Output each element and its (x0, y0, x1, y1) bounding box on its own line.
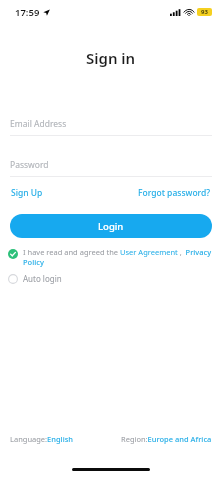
button[interactable]: Forgot password? (137, 185, 212, 201)
other: Agree to terms checkbox, checked (8, 249, 18, 259)
button[interactable]: Language:English (10, 432, 74, 446)
button[interactable]: Sign Up (10, 185, 44, 201)
staticText: Forgot password? (138, 187, 211, 199)
staticText: Password (10, 159, 49, 171)
button[interactable]: Auto login checkbox, unchecked (8, 273, 212, 284)
staticText: Sign Up (11, 187, 43, 199)
button[interactable]: Email Address (10, 116, 212, 136)
staticText: Login (98, 220, 124, 233)
staticText: Auto login (23, 273, 62, 284)
staticText: Sign in (86, 48, 136, 68)
staticText: 17:59 (15, 6, 40, 19)
other: Auto login checkbox, unchecked (8, 274, 18, 284)
button[interactable]: Region:Europe and Africa (121, 432, 212, 446)
staticText: Email Address (10, 118, 67, 130)
staticText: I have read and agreed the User Agreemen… (23, 247, 212, 267)
staticText: Region:Europe and Africa (121, 434, 212, 444)
staticText: 93 (201, 8, 208, 16)
button[interactable]: Agree to terms checkbox, checked (8, 247, 212, 267)
staticText: Language:English (10, 434, 74, 444)
button[interactable]: Password (10, 157, 212, 177)
button[interactable]: Login (10, 214, 212, 238)
